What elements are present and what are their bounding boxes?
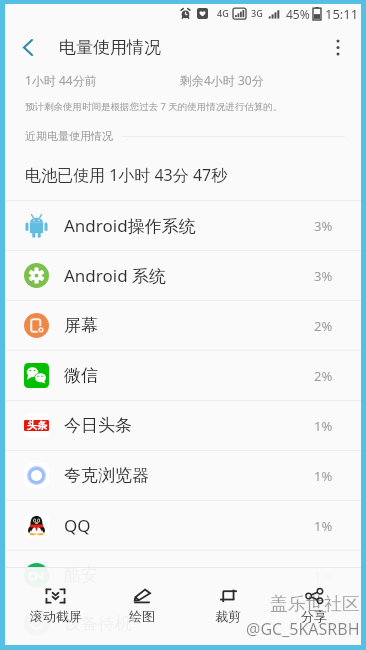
button[interactable]: Back bbox=[5, 23, 51, 71]
staticText: Android操作系统 bbox=[64, 214, 196, 237]
staticText: 近期电量使用情况 bbox=[25, 129, 113, 143]
staticText: 绘图 bbox=[129, 608, 155, 624]
staticText: 分享 bbox=[301, 608, 327, 624]
staticText: QQ bbox=[64, 514, 91, 537]
staticText: 屏幕 bbox=[64, 315, 98, 336]
staticText: 1% bbox=[314, 567, 333, 585]
staticText: 2% bbox=[314, 367, 333, 385]
button[interactable]: 裁剪 bbox=[185, 568, 271, 645]
button[interactable]: QQ bbox=[5, 501, 361, 551]
button[interactable]: Android 系统 bbox=[5, 251, 361, 301]
staticText: 微信 bbox=[64, 365, 98, 386]
staticText: 3% bbox=[314, 267, 333, 285]
staticText: 预计剩余使用时间是根据您过去 7 天的使用情况进行估算的。 bbox=[25, 100, 283, 113]
staticText: 3% bbox=[314, 217, 333, 235]
button[interactable]: 分享 bbox=[271, 568, 357, 645]
staticText: 头条 bbox=[27, 419, 47, 432]
staticText: 1小时 44分前 bbox=[25, 72, 97, 88]
button[interactable]: 设备待机 bbox=[5, 601, 361, 645]
staticText: 今日头条 bbox=[64, 415, 132, 436]
staticText: 裁剪 bbox=[215, 608, 241, 624]
button[interactable]: 绘图 bbox=[99, 568, 185, 645]
button[interactable]: 屏幕 bbox=[5, 301, 361, 351]
staticText: @GC_5KASRBH bbox=[246, 618, 360, 640]
staticText: 电量使用情况 bbox=[59, 37, 161, 58]
staticText: 3G bbox=[251, 7, 263, 19]
button[interactable]: 头条 bbox=[5, 401, 361, 451]
button[interactable]: 滚动截屏 bbox=[12, 568, 99, 645]
staticText: Android 系统 bbox=[64, 264, 167, 287]
button[interactable]: 酷安 bbox=[5, 551, 361, 601]
staticText: 2% bbox=[314, 317, 333, 335]
staticText: 盖乐世社区 bbox=[270, 593, 360, 616]
staticText: 1% bbox=[314, 417, 333, 435]
staticText: 1% bbox=[314, 614, 333, 632]
staticText: 4G bbox=[217, 7, 229, 19]
staticText: 1% bbox=[314, 517, 333, 535]
staticText: 夸克浏览器 bbox=[64, 465, 149, 486]
staticText: 45% bbox=[286, 6, 310, 22]
button[interactable]: Android操作系统 bbox=[5, 201, 361, 251]
staticText: 电池已使用 1小时 43分 47秒 bbox=[25, 164, 228, 186]
staticText: 15:11 bbox=[325, 5, 359, 23]
staticText: 剩余4小时 30分 bbox=[180, 72, 264, 88]
staticText: 酷安 bbox=[64, 565, 98, 586]
button[interactable]: More options bbox=[315, 24, 361, 70]
button[interactable]: 微信 bbox=[5, 351, 361, 401]
button[interactable]: 夸克浏览器 bbox=[5, 451, 361, 501]
staticText: 设备待机 bbox=[64, 613, 132, 634]
staticText: 滚动截屏 bbox=[30, 608, 82, 624]
staticText: 1% bbox=[314, 467, 333, 485]
